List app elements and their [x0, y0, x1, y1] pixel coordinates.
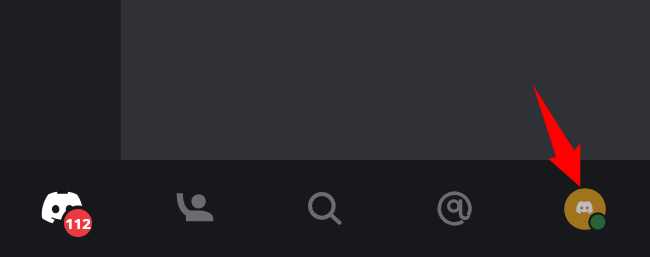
button[interactable]: Friends: [130, 160, 260, 257]
button[interactable]: Search: [260, 160, 390, 257]
button[interactable]: You: [520, 160, 650, 257]
staticText: 112: [65, 213, 91, 233]
button[interactable]: Servers: [0, 160, 130, 257]
button[interactable]: Mentions: [390, 160, 520, 257]
